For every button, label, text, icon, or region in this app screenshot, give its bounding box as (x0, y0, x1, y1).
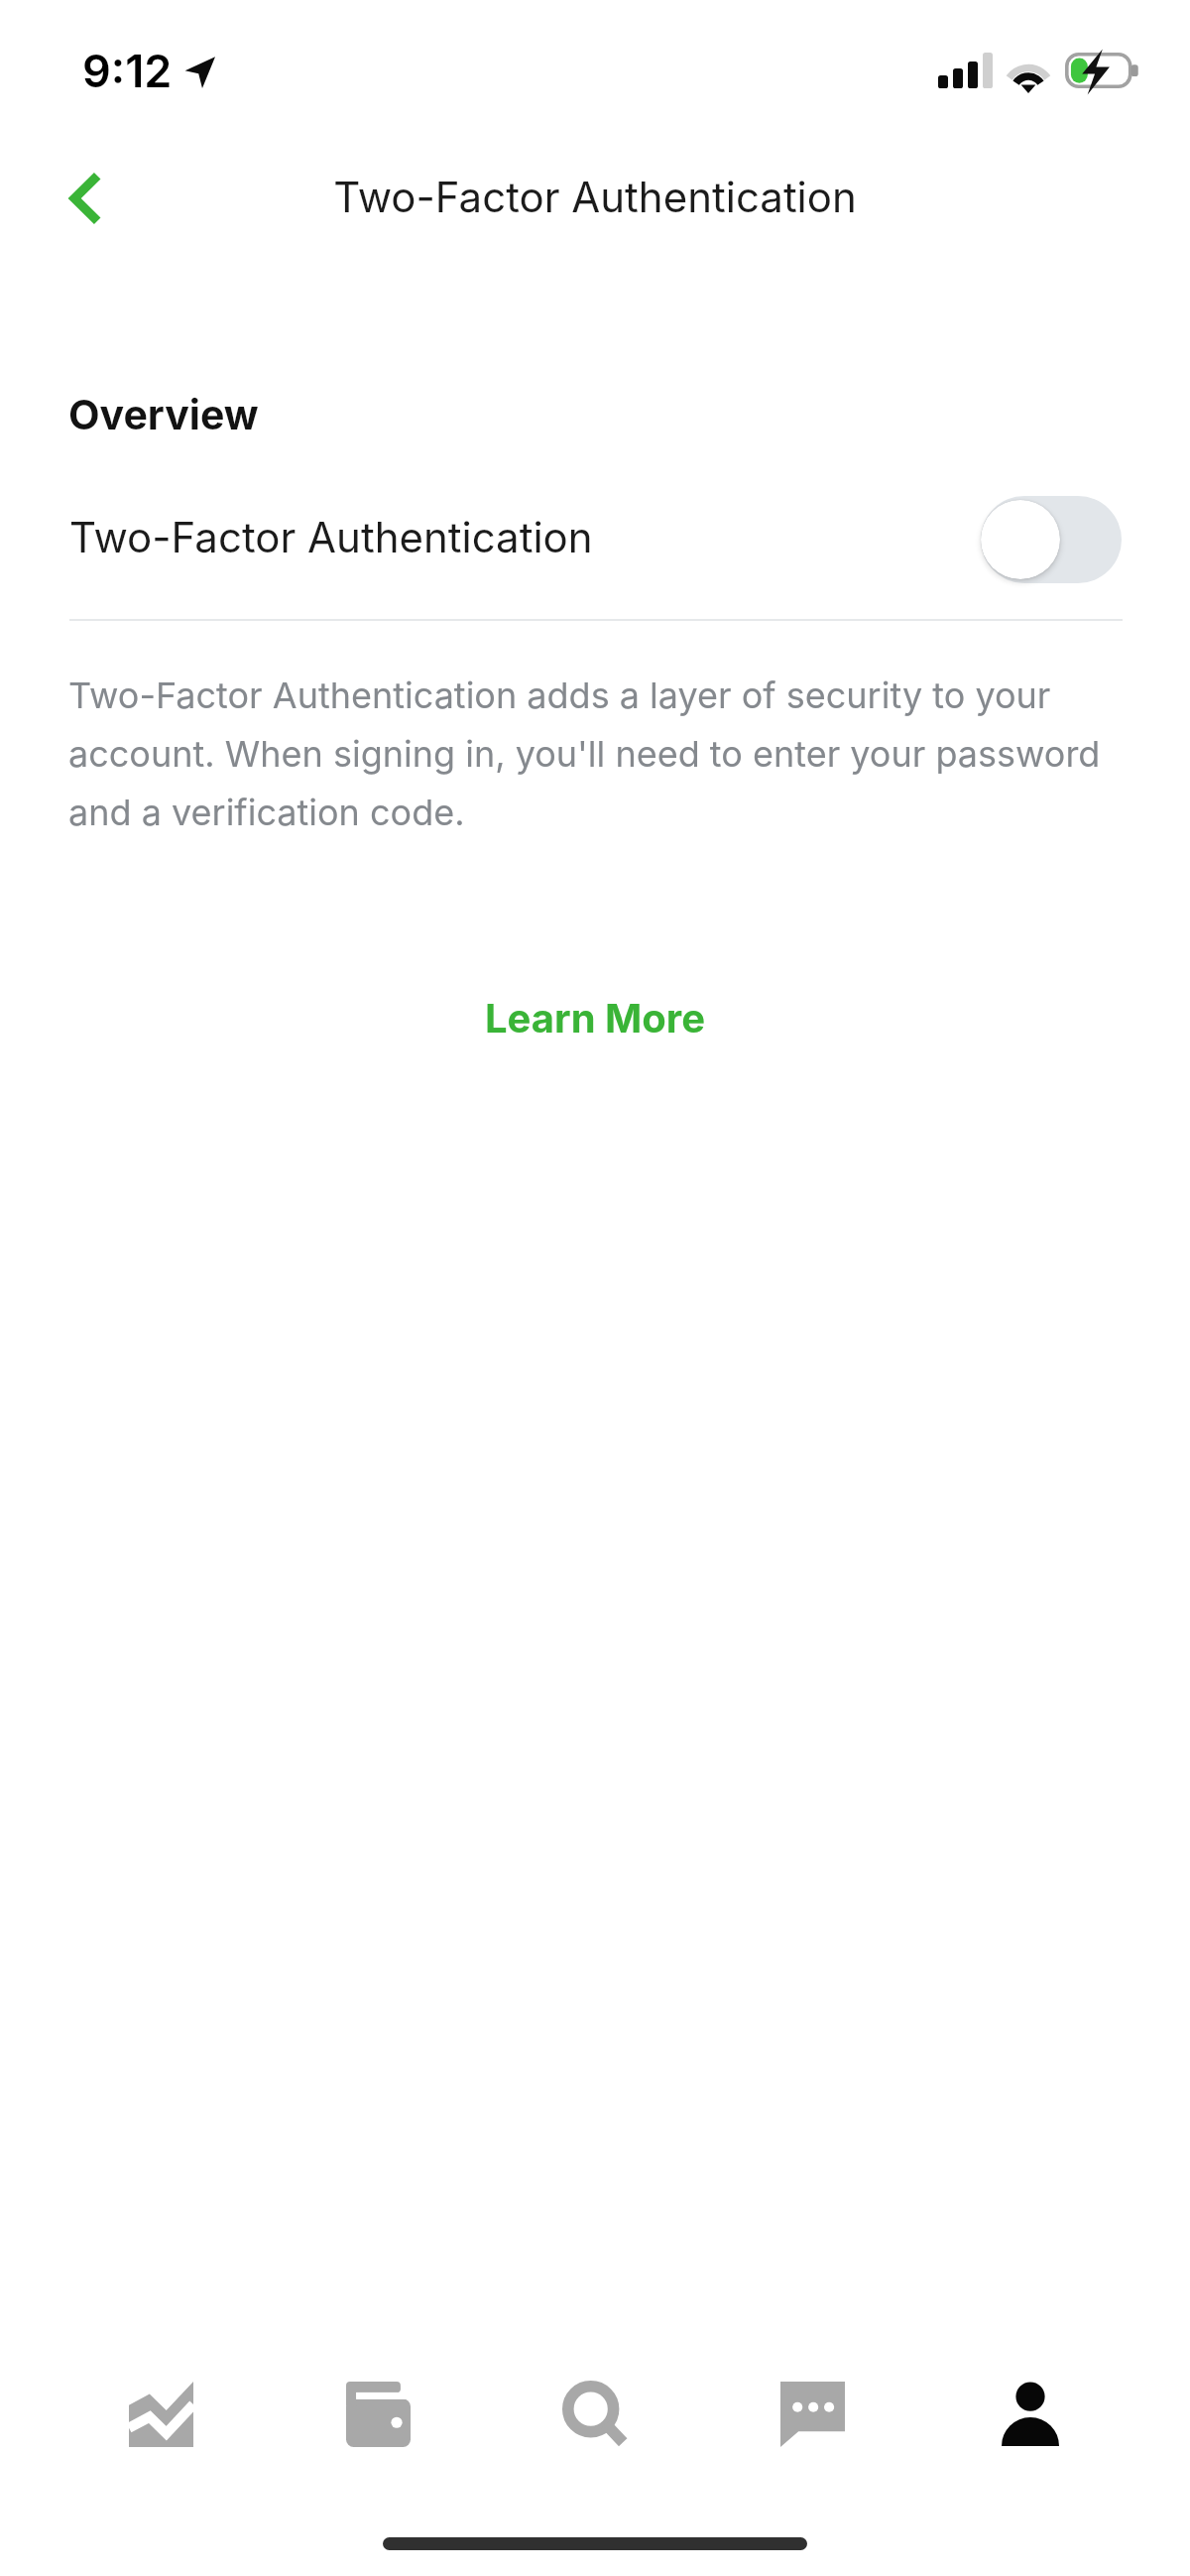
staticText: Overview (68, 390, 259, 439)
staticText: Two-Factor Authentication (69, 512, 593, 562)
button[interactable]: Wallet (270, 2340, 487, 2489)
button[interactable]: Portfolio (52, 2340, 270, 2489)
staticText: Two-Factor Authentication adds a layer o… (68, 674, 1134, 834)
staticText: Learn More (485, 994, 705, 1042)
staticText: Two-Factor Authentication (0, 172, 1190, 222)
button[interactable]: Two-Factor Authentication (0, 482, 1190, 591)
button[interactable]: Search (487, 2340, 704, 2489)
button[interactable]: Messages (704, 2340, 921, 2489)
button[interactable]: Learn More (449, 982, 741, 1053)
button[interactable]: Back (40, 153, 131, 244)
staticText: 9:12 (82, 44, 173, 97)
button[interactable]: Two-Factor Authentication toggle, off (980, 495, 1123, 584)
button[interactable]: Profile (921, 2340, 1138, 2489)
